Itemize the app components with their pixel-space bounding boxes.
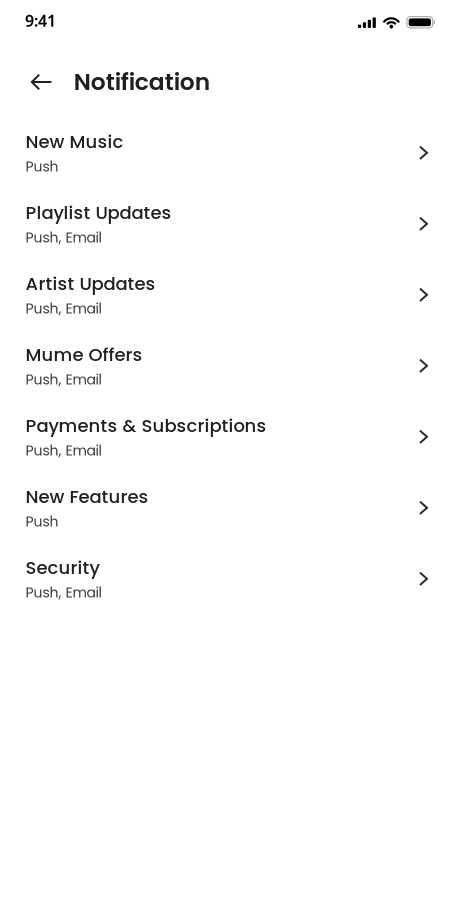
staticText: New Music xyxy=(25,129,123,154)
staticText: Push, Email xyxy=(25,583,101,602)
staticText: Mume Offers xyxy=(25,342,142,367)
button[interactable]: New Music xyxy=(0,117,460,188)
button[interactable]: Artist Updates xyxy=(0,259,460,330)
staticText: Security xyxy=(25,555,99,580)
staticText: New Features xyxy=(25,484,148,509)
staticText: Push, Email xyxy=(25,441,101,460)
button[interactable]: Back xyxy=(0,61,74,100)
button[interactable]: Payments & Subscriptions xyxy=(0,401,460,472)
button[interactable]: Playlist Updates xyxy=(0,188,460,259)
staticText: Push, Email xyxy=(25,299,101,318)
staticText: Push, Email xyxy=(25,228,101,247)
button[interactable]: New Features xyxy=(0,472,460,543)
staticText: 9:41 xyxy=(25,10,56,31)
button[interactable]: Mume Offers xyxy=(0,330,460,401)
staticText: Artist Updates xyxy=(25,271,155,296)
staticText: Payments & Subscriptions xyxy=(25,413,266,438)
staticText: Notification xyxy=(74,65,210,98)
staticText: Push, Email xyxy=(25,370,101,389)
staticText: Push xyxy=(25,157,58,176)
staticText: Push xyxy=(25,512,58,531)
staticText: Playlist Updates xyxy=(25,200,171,225)
button[interactable]: Security xyxy=(0,543,460,614)
